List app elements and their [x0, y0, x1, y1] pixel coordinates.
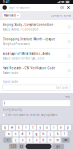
button[interactable]: ⇧ — [3, 138, 11, 143]
button[interactable]: j — [47, 131, 53, 136]
button[interactable]: z — [12, 138, 18, 143]
button[interactable]: o — [58, 125, 64, 130]
staticText: Verify Security — [2, 108, 21, 111]
button[interactable]: Consent Terms — [50, 14, 70, 17]
staticText: ⇧ — [6, 139, 8, 142]
staticText: e — [18, 126, 20, 129]
staticText: k — [57, 132, 58, 136]
button[interactable]: Chongqing Institute Month – League — [0, 34, 73, 49]
button[interactable]: Space — [25, 144, 51, 149]
button[interactable]: f — [26, 131, 32, 136]
staticText: Hard Research – CSV Verification Code — [2, 66, 55, 70]
staticText: z — [15, 138, 16, 142]
staticText: m — [56, 138, 58, 142]
staticText: w — [11, 126, 13, 129]
staticText: Social Layer of Metal Batches – Amdo — [2, 52, 50, 55]
button[interactable]: n — [47, 138, 53, 143]
button[interactable]: y — [37, 125, 43, 130]
staticText: f — [29, 132, 30, 136]
staticText: I do not want to receive any updates — [6, 113, 57, 117]
button[interactable]: Beijing Study – Complex Connection — [0, 20, 73, 34]
button[interactable]: x — [19, 138, 25, 143]
staticText: u — [46, 126, 48, 129]
staticText: go — [56, 145, 60, 148]
staticText: p — [67, 126, 69, 129]
button[interactable]: c — [26, 138, 32, 143]
staticText: c — [29, 138, 30, 142]
staticText: Mainland — [4, 14, 16, 17]
button[interactable]: go — [52, 144, 64, 149]
staticText: Beijing Study – Complex Connection — [2, 23, 53, 26]
staticText: o — [60, 126, 62, 129]
button[interactable]: Next keyboard — [18, 144, 24, 149]
staticText: h — [42, 132, 44, 136]
staticText: d — [21, 132, 23, 136]
button[interactable]: Settings — [60, 5, 64, 9]
staticText: l — [64, 132, 65, 136]
button[interactable]: Hard Research – CSV Verification Code — [0, 63, 73, 78]
button[interactable]: k — [54, 131, 60, 136]
staticText: j — [50, 132, 51, 136]
button[interactable]: r — [23, 125, 29, 130]
staticText: g — [35, 132, 37, 136]
staticText: Input code — [2, 80, 18, 83]
staticText: Consent Terms — [50, 14, 70, 17]
staticText: Status: Active / Connected — [2, 28, 38, 31]
button[interactable]: Get code — [56, 86, 69, 89]
staticText: Status: Under of the Lab, Zero — [2, 57, 44, 60]
staticText: a — [8, 132, 9, 136]
button[interactable]: ⌫ — [61, 138, 70, 143]
button[interactable]: s — [12, 131, 18, 136]
staticText: Tracker code — [2, 71, 18, 75]
button[interactable]: 123 — [9, 144, 17, 149]
button[interactable]: Social Layer of Metal Batches – Amdo — [0, 49, 73, 63]
staticText: x — [22, 138, 23, 142]
button[interactable]: d — [19, 131, 25, 136]
button[interactable]: e — [16, 125, 22, 130]
button[interactable]: i — [51, 125, 57, 130]
button[interactable]: m — [54, 138, 60, 143]
button[interactable]: l — [61, 131, 67, 136]
staticText: Get code — [56, 86, 69, 89]
staticText: Chongqing Institute Month – League — [2, 37, 55, 41]
button[interactable]: a — [5, 131, 11, 136]
button[interactable]: p — [65, 125, 71, 130]
button[interactable]: h — [40, 131, 46, 136]
button[interactable]: Close — [64, 5, 70, 9]
staticText: ⌫ — [64, 139, 68, 142]
staticText: b — [42, 138, 44, 142]
button[interactable]: g — [33, 131, 39, 136]
staticText: Next — [65, 95, 70, 98]
staticText: q — [4, 126, 6, 129]
button[interactable]: b — [40, 138, 46, 143]
staticText: s — [15, 132, 16, 136]
staticText: Sign in account — [7, 6, 30, 9]
button[interactable]: w — [9, 125, 15, 130]
button[interactable]: Mainland — [2, 13, 20, 18]
button[interactable]: t — [30, 125, 36, 130]
staticText: n — [49, 138, 51, 142]
button[interactable]: I do not want to receive any updates — [0, 111, 73, 117]
button[interactable]: v — [33, 138, 39, 143]
button[interactable]: Next — [65, 95, 70, 98]
staticText: Tsinghua Processors — [2, 42, 29, 46]
staticText: v — [36, 138, 37, 142]
staticText: 123 — [10, 145, 16, 148]
button[interactable]: u — [44, 125, 50, 130]
button[interactable]: q — [2, 125, 8, 130]
staticText: 9:41 — [3, 0, 10, 4]
staticText: t — [32, 126, 33, 129]
